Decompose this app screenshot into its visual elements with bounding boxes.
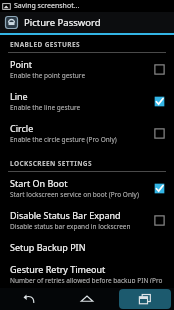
button[interactable]: Recent apps [116,288,174,310]
staticText: Disable status bar expand in lockscreen [10,222,131,231]
staticText: Line [10,90,28,102]
button[interactable]: Point [0,53,174,85]
staticText: Start On Boot [10,177,68,189]
staticText: LOCKSCREEN SETTINGS [10,159,92,168]
staticText: Enable the circle gesture (Pro Only) [10,135,117,144]
staticText: Picture Password [24,16,101,29]
button[interactable]: Start On Boot [0,172,174,204]
button[interactable]: Home [58,288,116,310]
button[interactable]: Gesture Retry Timeout [0,258,174,288]
staticText: Enable the line gesture [10,103,81,112]
staticText: Start lockscreen service on boot (Pro On… [10,190,139,199]
button[interactable]: Disabled [152,126,166,140]
button[interactable]: Setup Backup PIN [0,236,174,258]
staticText: Saving screenshot... [14,1,80,11]
staticText: Circle [10,122,34,134]
button[interactable]: Enabled [152,181,166,195]
other: App icon [4,15,19,30]
staticText: Disable Status Bar Expand [10,209,121,221]
button[interactable]: Back [0,288,58,310]
staticText: Point [10,58,33,70]
staticText: Gesture Retry Timeout [10,263,106,275]
button[interactable]: Circle [0,117,174,149]
button[interactable]: Disabled [152,213,166,227]
button[interactable]: Enabled [152,94,166,108]
button[interactable]: Disable Status Bar Expand [0,204,174,236]
button[interactable]: App icon [0,12,174,33]
staticText: Setup Backup PIN [10,241,86,253]
staticText: Enable the point gesture [10,71,86,80]
button[interactable]: Disabled [152,62,166,76]
staticText: Number of retries allowed before backup … [10,276,166,283]
button[interactable]: Line [0,85,174,117]
staticText: ENABLED GESTURES [10,40,80,49]
